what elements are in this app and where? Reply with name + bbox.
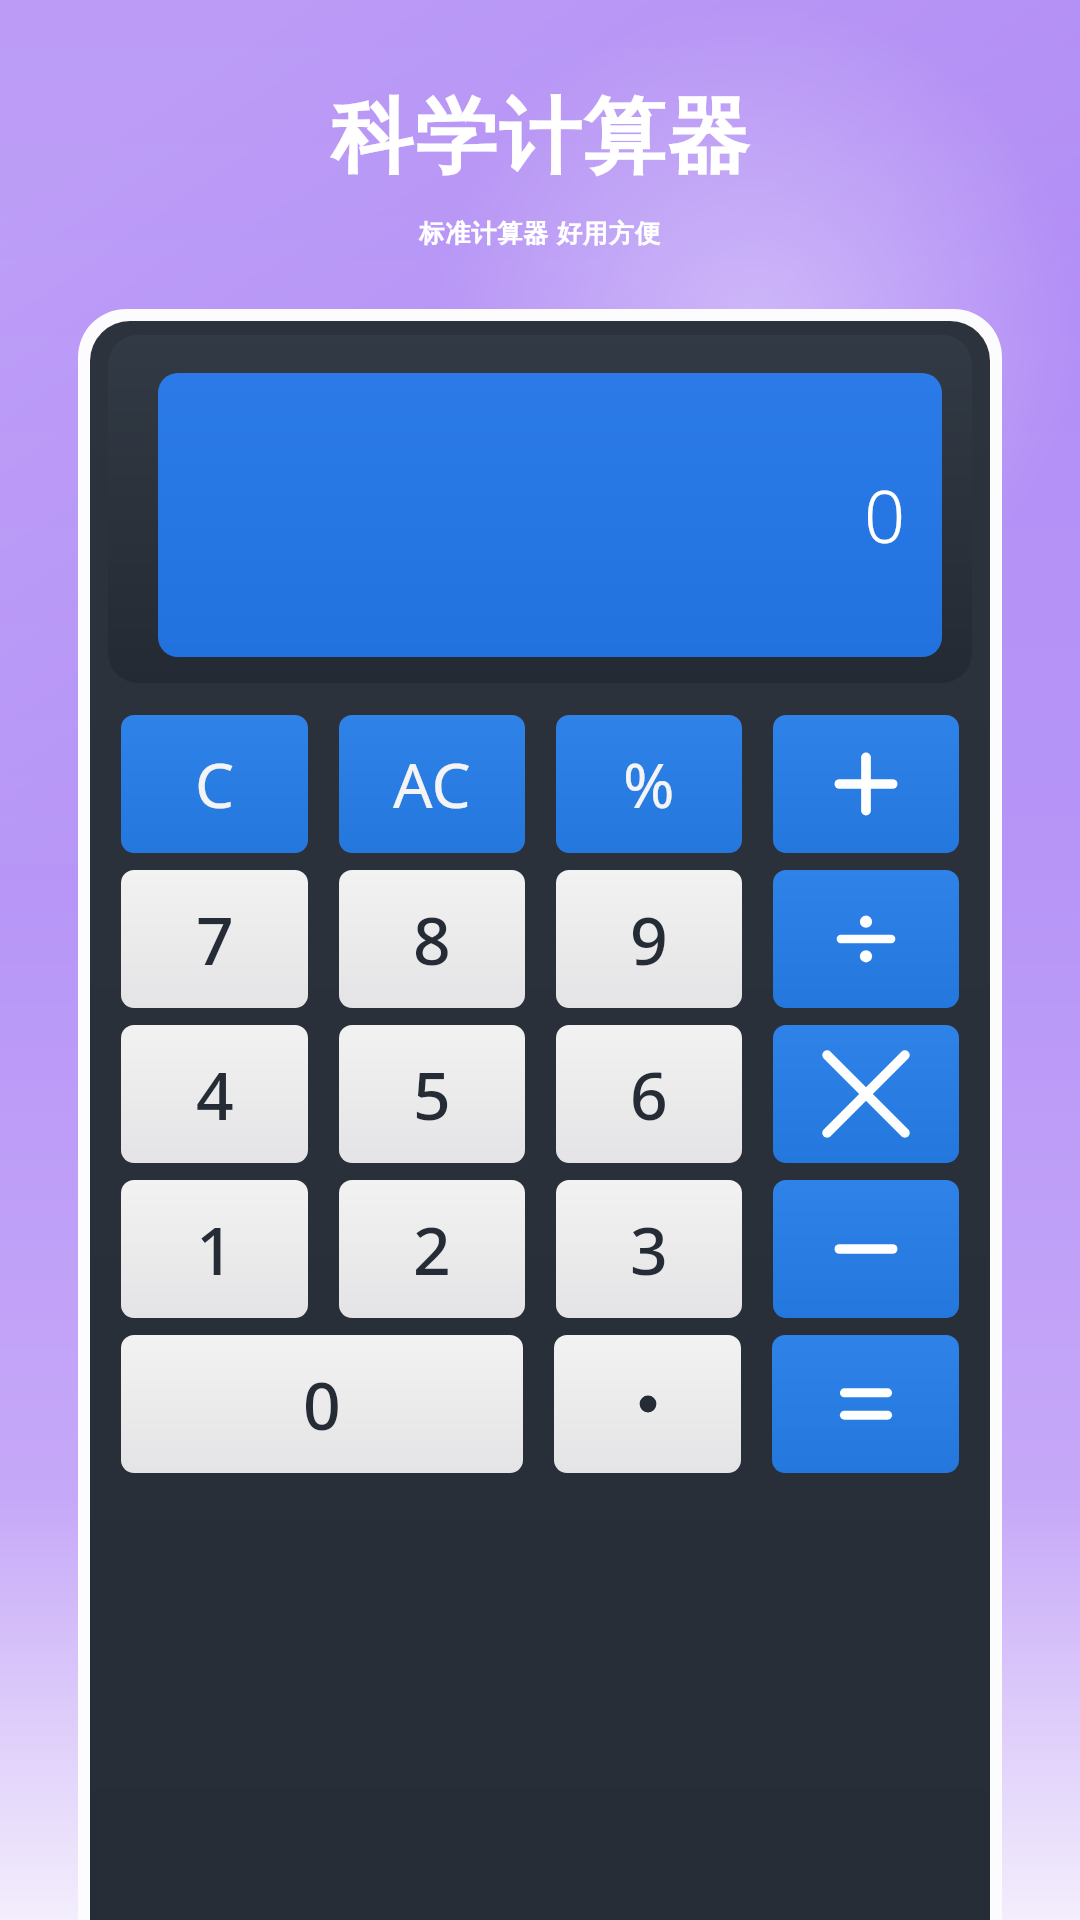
- button[interactable]: Divide: [773, 870, 959, 1008]
- button[interactable]: 3: [556, 1180, 742, 1318]
- staticText: 2: [413, 1204, 451, 1294]
- staticText: 1: [196, 1204, 234, 1294]
- button[interactable]: 8: [339, 870, 525, 1008]
- staticText: 4: [196, 1049, 234, 1139]
- button[interactable]: 6: [556, 1025, 742, 1163]
- button[interactable]: 7: [121, 870, 308, 1008]
- staticText: 3: [630, 1204, 668, 1294]
- staticText: 6: [630, 1049, 668, 1139]
- button[interactable]: C: [121, 715, 308, 853]
- button[interactable]: 9: [556, 870, 742, 1008]
- staticText: C: [195, 742, 235, 826]
- staticText: 0: [303, 1359, 341, 1449]
- staticText: 0: [864, 466, 906, 564]
- staticText: AC: [393, 742, 471, 826]
- button[interactable]: 0: [121, 1335, 523, 1473]
- staticText: 7: [196, 894, 234, 984]
- button[interactable]: 4: [121, 1025, 308, 1163]
- staticText: 9: [630, 894, 668, 984]
- button[interactable]: Plus: [773, 715, 959, 853]
- button[interactable]: AC: [339, 715, 525, 853]
- button[interactable]: Equals: [772, 1335, 959, 1473]
- button[interactable]: Multiply: [773, 1025, 959, 1163]
- staticText: 标准计算器 好用方便: [419, 215, 661, 249]
- button[interactable]: 1: [121, 1180, 308, 1318]
- staticText: 8: [413, 894, 451, 984]
- staticText: %: [623, 742, 675, 826]
- button[interactable]: %: [556, 715, 742, 853]
- button[interactable]: 5: [339, 1025, 525, 1163]
- staticText: 科学计算器: [330, 86, 750, 189]
- button[interactable]: [554, 1335, 741, 1473]
- staticText: 5: [413, 1049, 451, 1139]
- button[interactable]: 2: [339, 1180, 525, 1318]
- button[interactable]: Minus: [773, 1180, 959, 1318]
